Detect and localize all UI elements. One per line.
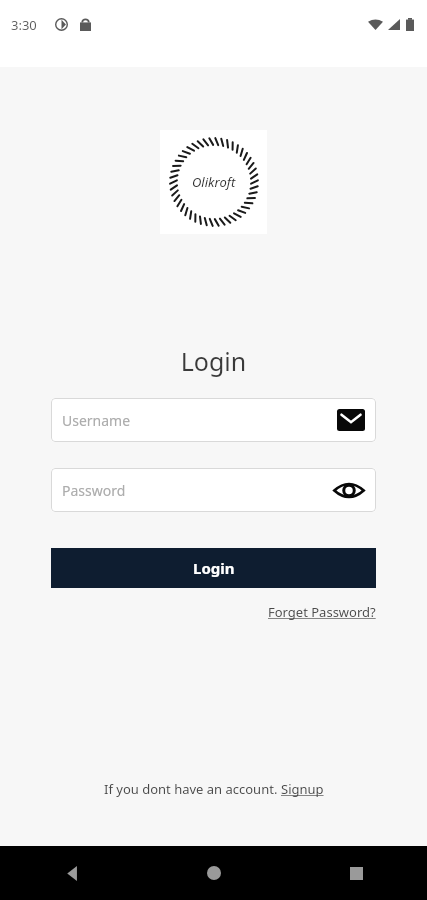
staticText: Login: [0, 344, 427, 378]
staticText: Signup: [281, 780, 324, 798]
staticText: Password: [62, 481, 332, 500]
button[interactable]: Back: [0, 846, 143, 900]
button[interactable]: Recent apps: [285, 846, 427, 900]
staticText: Username: [62, 411, 336, 430]
staticText: 3:30: [11, 16, 37, 34]
button[interactable]: Login: [51, 548, 376, 588]
staticText: Login: [193, 558, 235, 578]
button[interactable]: Username: [51, 398, 376, 442]
button[interactable]: Email: [336, 407, 366, 433]
button[interactable]: Password: [51, 468, 376, 512]
button[interactable]: Forget Password?: [266, 601, 378, 623]
button[interactable]: Signup: [281, 780, 324, 798]
button[interactable]: Show password: [332, 477, 366, 503]
button[interactable]: Home: [143, 846, 285, 900]
staticText: Forget Password?: [268, 603, 376, 621]
staticText: If you dont have an account.: [104, 780, 281, 798]
staticText: Olikroft: [192, 173, 236, 191]
